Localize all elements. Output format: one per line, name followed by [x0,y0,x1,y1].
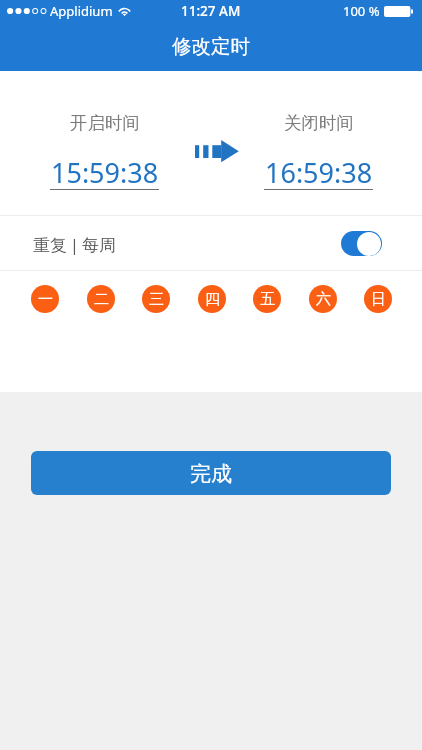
staticText: 100 % [343,2,380,20]
button[interactable]: 一 [31,285,59,313]
staticText: 修改定时 [172,34,250,59]
staticText: 一 [38,290,53,309]
button[interactable]: 四 [198,285,226,313]
button[interactable]: 关闭时间 [211,71,422,215]
staticText: 三 [149,290,164,309]
staticText: 重复 | 每周 [33,233,117,256]
button[interactable]: 重复 | 每周 [0,216,422,270]
button[interactable]: 二 [87,285,115,313]
button[interactable]: 完成 [31,451,391,495]
staticText: 11:27 AM [181,2,241,20]
staticText: 开启时间 [70,112,140,134]
staticText: Applidium [50,2,113,20]
button[interactable]: 日 [364,285,392,313]
staticText: 五 [260,290,275,309]
staticText: 完成 [190,461,232,487]
button[interactable]: 五 [253,285,281,313]
staticText: 日 [371,290,386,309]
button[interactable]: 三 [142,285,170,313]
staticText: 六 [316,290,331,309]
staticText: 四 [205,290,220,309]
staticText: 二 [94,290,109,309]
staticText: 16:59:38 [265,154,373,191]
staticText: 关闭时间 [284,112,354,134]
button[interactable]: 开启时间 [0,71,211,215]
button[interactable]: 六 [309,285,337,313]
staticText: 15:59:38 [51,154,159,191]
button[interactable]: Repeat weekly toggle [341,231,382,256]
